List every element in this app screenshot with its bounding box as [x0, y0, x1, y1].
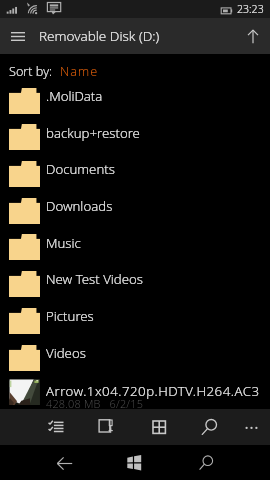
staticText: Sort by: [9, 62, 52, 79]
staticText: Music [46, 234, 81, 252]
button[interactable]: Select [38, 409, 74, 445]
staticText: backup+restore [46, 124, 140, 142]
button[interactable]: Up one level [236, 18, 270, 54]
staticText: Pictures [46, 307, 94, 325]
button[interactable] [0, 379, 270, 416]
staticText: Downloads [46, 197, 113, 215]
button[interactable] [0, 195, 270, 232]
button[interactable]: Search [191, 409, 227, 445]
staticText: 428.08 MB 6/2/15 [46, 396, 144, 411]
staticText: .MoliData [46, 87, 103, 105]
button[interactable]: Back [46, 445, 81, 480]
button[interactable]: Menu [0, 18, 36, 54]
button[interactable]: Sort by: [0, 54, 270, 85]
button[interactable]: Change view [142, 409, 178, 445]
staticText: Videos [46, 344, 86, 362]
staticText: New Test Videos [46, 270, 144, 288]
button[interactable] [0, 122, 270, 159]
button[interactable] [0, 159, 270, 196]
staticText: Documents [46, 160, 115, 178]
button[interactable] [0, 85, 270, 122]
staticText: Arrow.1x04.720p.HDTV.H264.AC3 [46, 382, 260, 400]
button[interactable]: Search [188, 445, 223, 480]
button[interactable]: Start [116, 445, 151, 480]
staticText: Name [60, 62, 99, 79]
button[interactable]: More options [233, 409, 269, 445]
button[interactable] [0, 269, 270, 306]
staticText: Removable Disk (D:) [39, 26, 160, 45]
button[interactable] [0, 342, 270, 379]
button[interactable]: New folder [88, 409, 124, 445]
button[interactable] [0, 305, 270, 342]
staticText: 23:23 [237, 2, 264, 16]
button[interactable] [0, 232, 270, 269]
